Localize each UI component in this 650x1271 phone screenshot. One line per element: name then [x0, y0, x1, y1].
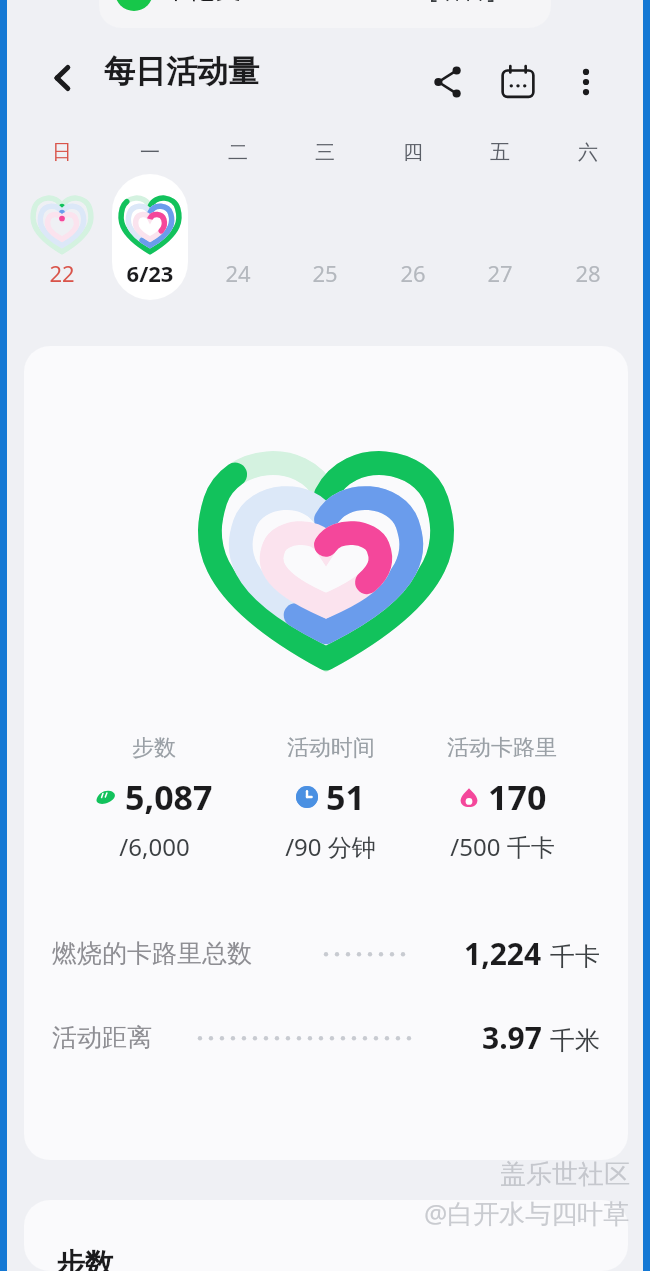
staticText: 步数: [132, 734, 176, 762]
staticText: 22: [22, 258, 102, 288]
button[interactable]: 活动距离: [52, 1006, 600, 1068]
button[interactable]: Calendar: [494, 58, 542, 106]
button[interactable]: [112, 174, 188, 300]
button[interactable]: Back: [38, 54, 86, 102]
staticText: 27: [460, 258, 540, 288]
staticText: 24: [198, 258, 278, 288]
button[interactable]: 活动时间: [285, 734, 376, 863]
button[interactable]: 活动卡路里: [447, 734, 557, 863]
staticText: 3.97: [482, 1017, 542, 1058]
staticText: 活动距离: [52, 1022, 152, 1053]
button[interactable]: More options: [562, 58, 610, 106]
staticText: 千卡: [550, 941, 600, 972]
staticText: [语音] 17: [429, 0, 531, 5]
staticText: 活动时间: [287, 734, 375, 762]
staticText: 四: [383, 140, 443, 165]
staticText: 步数: [56, 1246, 114, 1271]
staticText: 六: [558, 140, 618, 165]
staticText: 千米: [550, 1025, 600, 1056]
staticText: 1,224: [464, 933, 542, 974]
button[interactable]: [546, 132, 630, 332]
staticText: 宋艳英SONG...: [163, 0, 336, 6]
button[interactable]: [458, 132, 542, 332]
staticText: 5,087: [125, 774, 213, 820]
button[interactable]: [108, 132, 192, 332]
staticText: 活动卡路里: [447, 734, 557, 762]
staticText: 日: [32, 140, 92, 165]
button[interactable]: [283, 132, 367, 332]
staticText: 170: [488, 774, 547, 820]
staticText: /6,000: [119, 830, 190, 863]
button[interactable]: 步数: [24, 1200, 628, 1271]
button[interactable]: 宋艳英SONG...: [99, 0, 551, 28]
staticText: 每日活动量: [104, 52, 259, 91]
staticText: 盖乐世社区: [500, 1158, 630, 1191]
staticText: @白开水与四叶草: [424, 1195, 630, 1231]
staticText: 二: [208, 140, 268, 165]
staticText: 26: [373, 258, 453, 288]
button[interactable]: [371, 132, 455, 332]
staticText: 一: [120, 140, 180, 165]
staticText: 28: [548, 258, 628, 288]
staticText: 五: [470, 140, 530, 165]
button[interactable]: Share: [424, 58, 472, 106]
button[interactable]: 步数: [24, 346, 628, 1160]
button[interactable]: [196, 132, 280, 332]
button[interactable]: 步数: [95, 734, 213, 863]
button[interactable]: [20, 132, 104, 332]
staticText: 6/23: [110, 258, 190, 288]
staticText: 三: [295, 140, 355, 165]
staticText: 25: [285, 258, 365, 288]
staticText: /90 分钟: [285, 830, 376, 863]
button[interactable]: 燃烧的卡路里总数: [52, 922, 600, 984]
staticText: /500 千卡: [450, 830, 555, 863]
staticText: 51: [326, 774, 365, 820]
staticText: 燃烧的卡路里总数: [52, 938, 252, 969]
